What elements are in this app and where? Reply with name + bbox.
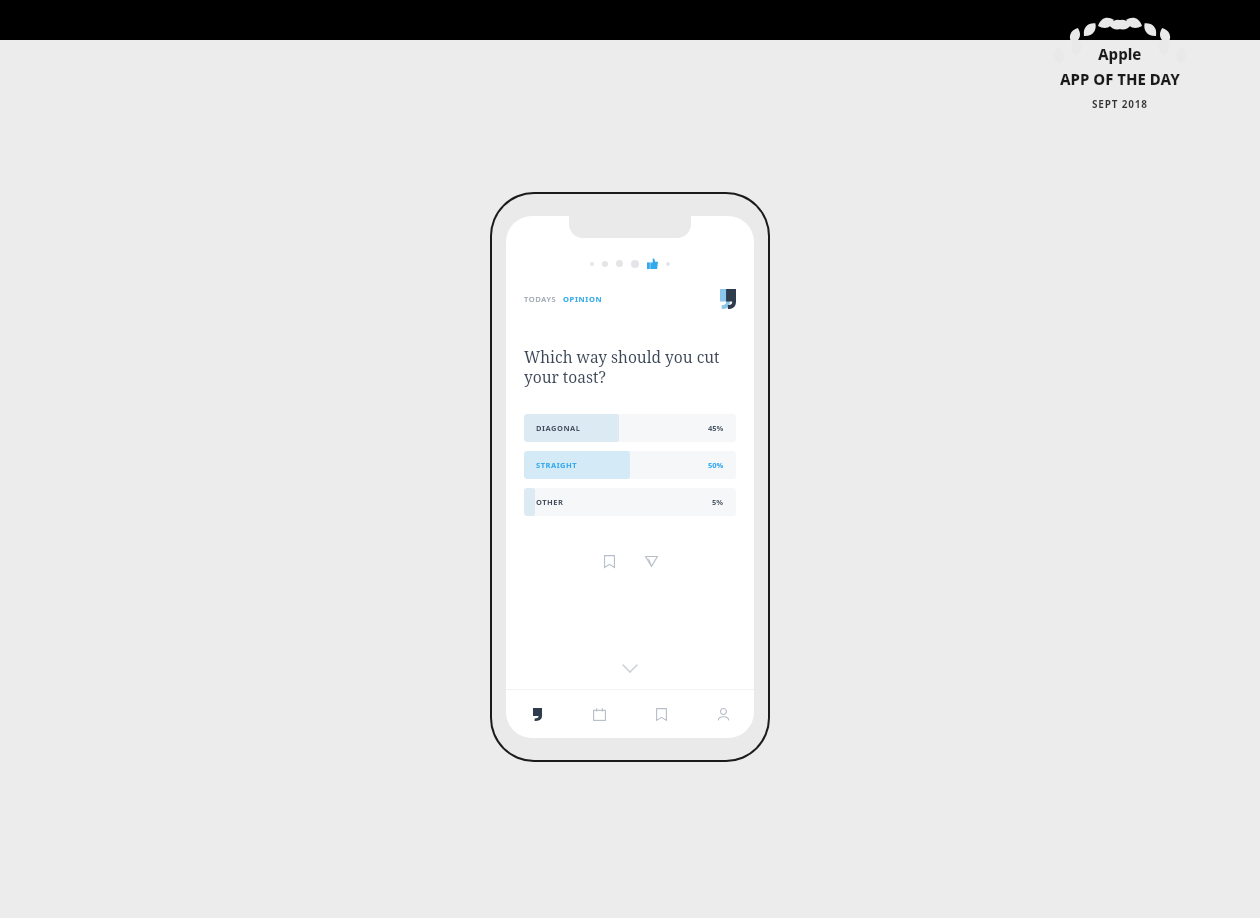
staticText: 45% (708, 423, 724, 433)
button[interactable]: Opinion (647, 258, 658, 269)
button[interactable]: Share (638, 548, 664, 574)
button[interactable]: Calendar (568, 690, 630, 738)
button[interactable]: Scroll down (506, 655, 754, 681)
button[interactable]: Bookmarks (630, 690, 692, 738)
staticText: APP OF THE DAY (1060, 69, 1180, 89)
button[interactable]: Profile (692, 690, 754, 738)
staticText: 50% (708, 460, 724, 470)
button[interactable]: STRAIGHT (524, 451, 736, 479)
staticText: Apple (1098, 44, 1142, 64)
button[interactable]: Bookmark (596, 548, 622, 574)
staticText: STRAIGHT (536, 460, 578, 470)
staticText: TODAYS (524, 294, 557, 304)
other: App logo (720, 289, 736, 309)
staticText: OPINION (563, 294, 603, 304)
staticText: 5% (712, 497, 724, 507)
button[interactable]: Opinions (506, 690, 568, 738)
staticText: Which way should you cut your toast? (524, 346, 736, 388)
staticText: SEPT 2018 (1092, 97, 1148, 111)
button[interactable]: DIAGONAL (524, 414, 736, 442)
staticText: OTHER (536, 497, 564, 507)
staticText: DIAGONAL (536, 423, 581, 433)
button[interactable]: OTHER (524, 488, 736, 516)
